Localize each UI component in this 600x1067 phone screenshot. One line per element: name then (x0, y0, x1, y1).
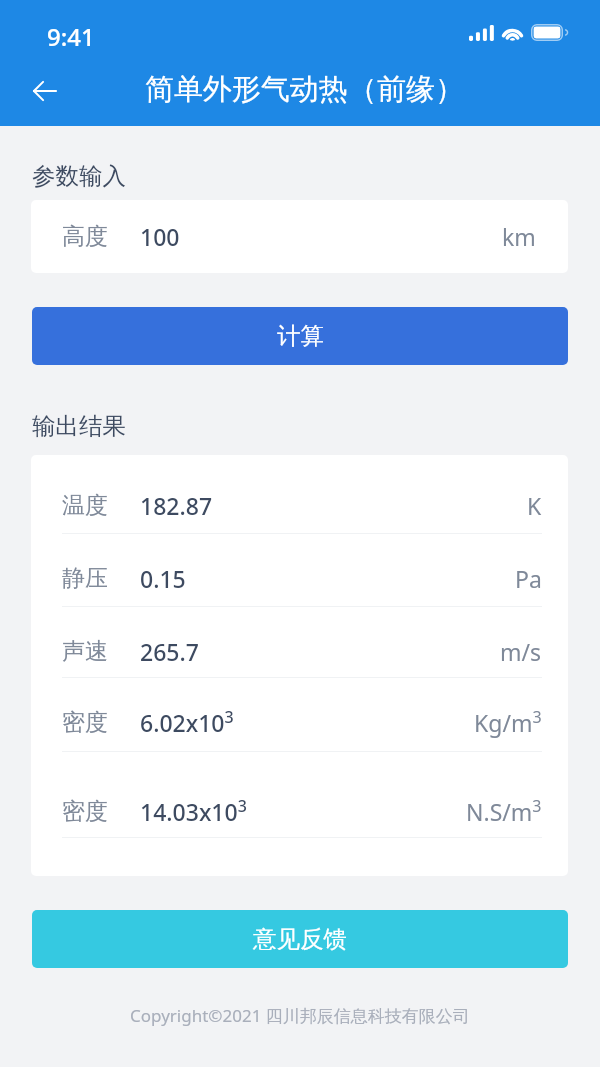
staticText: m/s (500, 636, 542, 667)
button[interactable]: 意见反馈 (32, 910, 568, 968)
staticText: 声速 (62, 637, 108, 666)
button[interactable]: 计算 (32, 307, 568, 365)
staticText: 182.87 (140, 490, 213, 521)
staticText: 密度 (62, 797, 108, 826)
staticText: Kg/m3 (474, 706, 542, 739)
staticText: 密度 (62, 708, 108, 737)
staticText: Copyright©2021 四川邦辰信息科技有限公司 (130, 1004, 470, 1027)
staticText: 简单外形气动热（前缘） (145, 71, 464, 108)
staticText: K (527, 490, 542, 521)
staticText: 6.02x103 (140, 706, 234, 739)
staticText: N.S/m3 (466, 795, 542, 828)
staticText: km (502, 221, 536, 252)
staticText: 意见反馈 (253, 924, 347, 954)
staticText: 输出结果 (32, 411, 126, 441)
staticText: 高度 (62, 222, 108, 251)
staticText: 265.7 (140, 636, 199, 667)
staticText: 14.03x103 (140, 795, 247, 828)
staticText: 温度 (62, 491, 108, 520)
staticText: 静压 (62, 564, 108, 593)
button[interactable]: Back (20, 66, 70, 116)
staticText: 9:41 (47, 20, 95, 53)
staticText: 100 (140, 221, 180, 252)
staticText: 计算 (277, 321, 324, 351)
staticText: 参数输入 (32, 161, 126, 191)
staticText: 0.15 (140, 563, 186, 594)
staticText: Pa (515, 563, 542, 594)
